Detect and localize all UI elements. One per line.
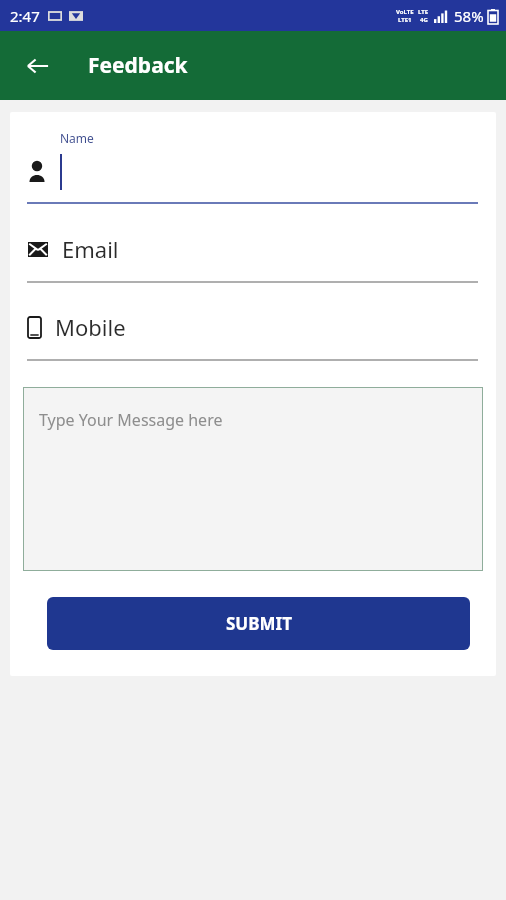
button[interactable]: SUBMIT xyxy=(47,597,470,650)
button[interactable]: Email xyxy=(10,228,496,283)
staticText: 4G xyxy=(420,16,428,24)
staticText: 2:47 xyxy=(10,6,40,26)
button[interactable]: Back xyxy=(16,44,60,88)
staticText: Feedback xyxy=(88,51,188,80)
staticText: SUBMIT xyxy=(226,612,292,635)
staticText: Name xyxy=(60,130,94,146)
staticText: LTE1 xyxy=(398,16,412,24)
staticText: 58% xyxy=(454,6,484,26)
button[interactable]: Mobile xyxy=(10,306,496,361)
button[interactable]: Name xyxy=(10,126,496,204)
staticText: LTE xyxy=(418,8,429,16)
staticText: Type Your Message here xyxy=(39,409,223,431)
staticText: Mobile xyxy=(55,312,126,342)
button[interactable]: Type Your Message here xyxy=(23,387,483,571)
staticText: Email xyxy=(62,234,119,264)
staticText: VoLTE xyxy=(396,8,414,16)
